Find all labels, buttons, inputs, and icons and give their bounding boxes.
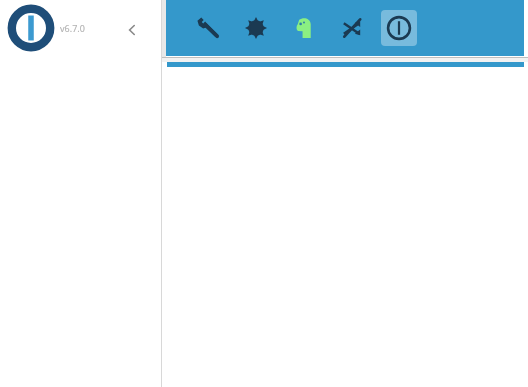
button[interactable]: Power [381, 10, 417, 46]
staticText: v6.7.0 [60, 22, 85, 34]
button[interactable]: Settings [191, 11, 225, 45]
button[interactable]: App logo [7, 4, 55, 52]
button[interactable]: Brightness [239, 11, 273, 45]
button[interactable]: Collapse panel [120, 18, 144, 42]
button[interactable]: Profile [287, 11, 321, 45]
button[interactable]: Disable sync [335, 11, 369, 45]
